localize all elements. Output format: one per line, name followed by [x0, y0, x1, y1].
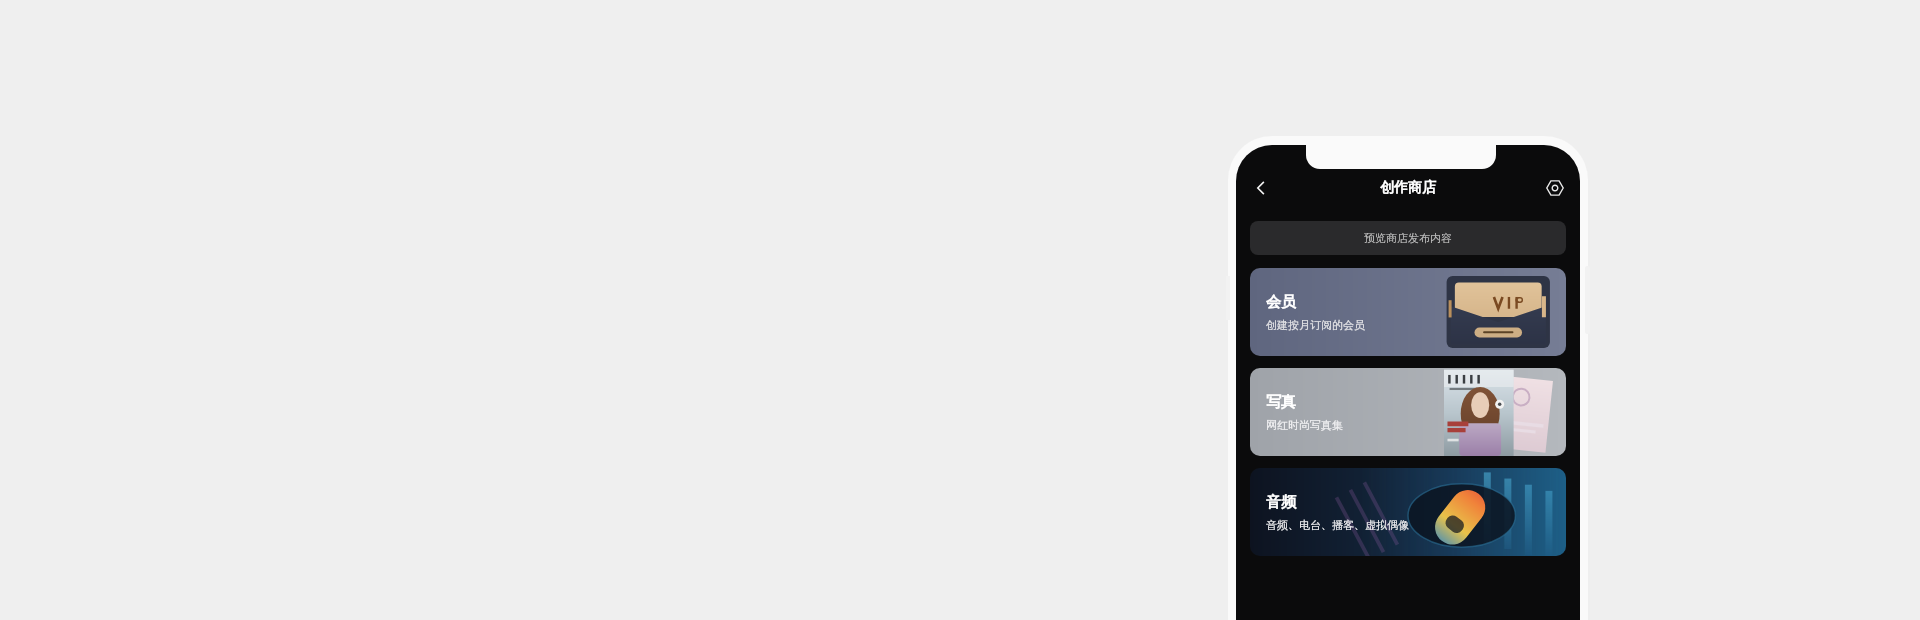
staticText: 写真	[1266, 393, 1296, 412]
button[interactable]: 写真	[1250, 368, 1566, 456]
button[interactable]: 预览商店发布内容	[1250, 221, 1566, 255]
button[interactable]: 会员	[1250, 268, 1566, 356]
staticText: 预览商店发布内容	[1364, 231, 1452, 245]
button[interactable]: Back	[1244, 171, 1278, 205]
staticText: 创建按月订阅的会员	[1266, 318, 1365, 332]
staticText: 会员	[1266, 293, 1296, 312]
button[interactable]: 音频	[1250, 468, 1566, 556]
staticText: 音频、电台、播客、虚拟偶像	[1266, 518, 1409, 532]
staticText: 音频	[1266, 493, 1296, 512]
button[interactable]: Settings	[1539, 172, 1571, 204]
staticText: 网红时尚写真集	[1266, 418, 1343, 432]
staticText: 创作商店	[1380, 179, 1436, 197]
